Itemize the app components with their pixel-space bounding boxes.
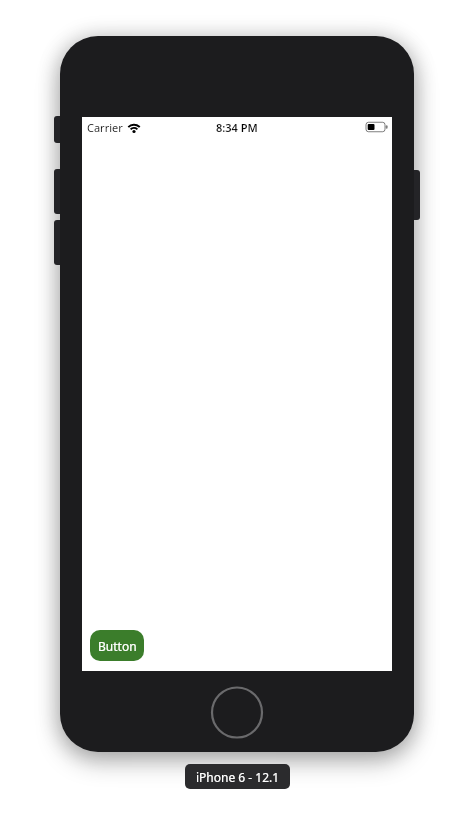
- button[interactable]: iPhone 6 - 12.1: [185, 764, 290, 789]
- staticText: iPhone 6 - 12.1: [196, 769, 280, 785]
- button[interactable]: Button: [90, 630, 144, 661]
- staticText: Button: [98, 638, 137, 654]
- staticText: Carrier: [87, 120, 123, 135]
- staticText: 8:34 PM: [216, 120, 258, 135]
